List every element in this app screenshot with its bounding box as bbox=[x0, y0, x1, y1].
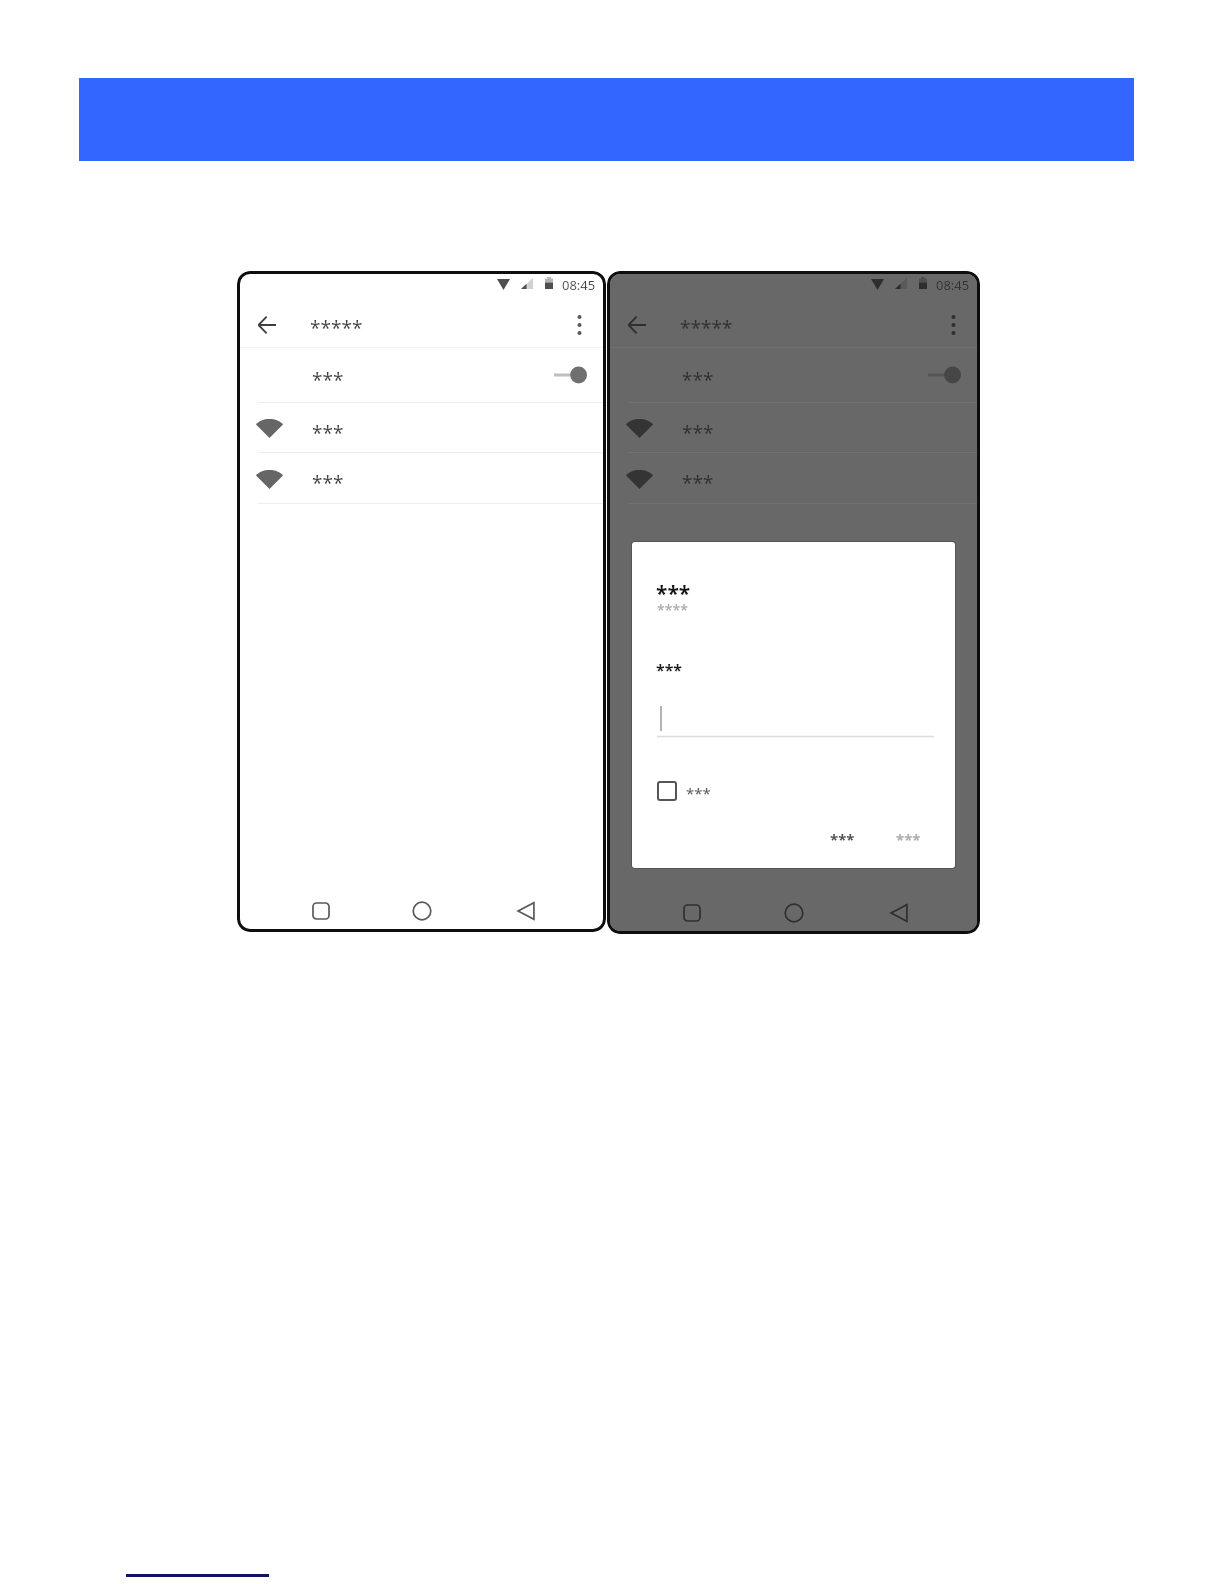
button[interactable]: *** bbox=[610, 403, 977, 452]
staticText: *** bbox=[682, 420, 714, 446]
button[interactable]: *** bbox=[818, 822, 867, 856]
staticText: 08:45 bbox=[562, 276, 596, 294]
button[interactable]: Back bbox=[875, 895, 915, 931]
staticText: *** bbox=[312, 470, 344, 496]
button[interactable]: Navigate up bbox=[610, 302, 664, 347]
button[interactable]: *** bbox=[240, 453, 603, 503]
staticText: *** bbox=[656, 659, 683, 681]
staticText: *** bbox=[830, 829, 855, 849]
staticText: *** bbox=[686, 783, 711, 803]
button[interactable]: Navigate up bbox=[240, 302, 294, 347]
staticText: ***** bbox=[680, 315, 733, 341]
button[interactable]: *** bbox=[610, 348, 977, 402]
button[interactable]: *** bbox=[610, 453, 977, 503]
button[interactable]: *** bbox=[240, 403, 603, 452]
staticText: *** bbox=[312, 367, 344, 393]
staticText: **** bbox=[657, 600, 688, 619]
staticText: *** bbox=[656, 579, 691, 608]
button[interactable]: Home bbox=[774, 895, 814, 931]
staticText: *** bbox=[682, 470, 714, 496]
staticText: 08:45 bbox=[936, 276, 970, 294]
button[interactable]: More options bbox=[929, 302, 977, 347]
button[interactable]: Recents bbox=[672, 895, 712, 931]
button[interactable]: Back bbox=[502, 893, 542, 929]
staticText: *** bbox=[312, 420, 344, 446]
staticText: ***** bbox=[310, 315, 363, 341]
button[interactable]: *** bbox=[657, 781, 711, 801]
button[interactable]: Recents bbox=[301, 893, 341, 929]
staticText: *** bbox=[896, 829, 921, 849]
button[interactable]: *** bbox=[240, 348, 603, 402]
button[interactable]: More options bbox=[555, 302, 603, 347]
button[interactable]: Home bbox=[402, 893, 442, 929]
button[interactable]: *** bbox=[884, 822, 933, 856]
staticText: *** bbox=[682, 367, 714, 393]
